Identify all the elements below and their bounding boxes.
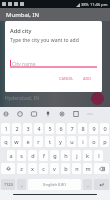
button[interactable]: x <box>28 163 37 174</box>
staticText: c <box>42 165 45 172</box>
button[interactable]: Voice input <box>44 110 52 118</box>
button[interactable]: k <box>83 150 92 161</box>
staticText: City name <box>12 61 36 68</box>
button[interactable]: 1 <box>1 123 10 134</box>
staticText: ADD <box>83 76 92 81</box>
button[interactable]: v <box>50 163 59 174</box>
staticText: s <box>20 152 23 159</box>
staticText: English (UK) <box>43 182 66 187</box>
staticText: CANCEL <box>59 76 74 81</box>
button[interactable]: More options <box>86 110 94 118</box>
staticText: 2 <box>15 125 19 132</box>
button[interactable]: j <box>72 150 81 161</box>
button[interactable]: . <box>83 179 92 190</box>
button[interactable]: t <box>45 136 54 147</box>
button[interactable]: z <box>17 163 26 174</box>
staticText: 5 <box>48 125 52 132</box>
button[interactable]: l <box>94 150 103 161</box>
staticText: u <box>70 138 74 145</box>
button[interactable]: e <box>23 136 32 147</box>
button[interactable]: s <box>17 150 26 161</box>
button[interactable]: a <box>7 150 15 161</box>
button[interactable]: n <box>72 163 81 174</box>
button[interactable]: 5 <box>45 123 54 134</box>
staticText: z <box>20 165 23 172</box>
staticText: h <box>64 152 68 159</box>
button[interactable]: 4 <box>34 123 43 134</box>
staticText: 7 <box>70 125 74 132</box>
button[interactable]: Stickers <box>16 110 24 118</box>
staticText: , <box>21 181 23 188</box>
staticText: f <box>43 152 45 159</box>
staticText: 3 <box>26 125 30 132</box>
button[interactable]: English (UK) <box>28 179 81 190</box>
staticText: 9 <box>92 125 96 132</box>
staticText: y <box>59 138 62 145</box>
staticText: 8 <box>81 125 85 132</box>
staticText: m <box>85 165 91 172</box>
staticText: 4 <box>37 125 41 132</box>
button[interactable]: o <box>89 136 98 147</box>
staticText: Add city <box>10 27 32 35</box>
staticText: 1 <box>4 125 8 132</box>
button[interactable]: c <box>39 163 48 174</box>
button[interactable]: Shift <box>1 163 15 174</box>
staticText: ?123 <box>4 182 13 187</box>
button[interactable]: CANCEL <box>56 73 77 84</box>
button[interactable]: q <box>1 136 10 147</box>
button[interactable]: g <box>50 150 59 161</box>
staticText: . <box>87 181 89 188</box>
staticText: x <box>31 165 34 172</box>
staticText: v <box>53 165 56 172</box>
button[interactable]: b <box>61 163 70 174</box>
staticText: q <box>4 138 8 145</box>
staticText: 38% 11:46 pm <box>81 2 108 7</box>
button[interactable]: 6 <box>56 123 65 134</box>
button[interactable]: Google search <box>2 110 10 118</box>
button[interactable]: Enter <box>94 179 109 190</box>
staticText: i <box>82 138 84 145</box>
button[interactable]: m <box>83 163 92 174</box>
button[interactable]: Clipboard <box>72 110 80 118</box>
button[interactable]: 9 <box>89 123 98 134</box>
button[interactable]: r <box>34 136 43 147</box>
button[interactable]: Backspace <box>94 163 109 174</box>
staticText: r <box>37 138 40 145</box>
staticText: n <box>75 165 79 172</box>
button[interactable]: 2 <box>12 123 21 134</box>
button[interactable]: f <box>39 150 48 161</box>
staticText: Hyderabad, IN <box>5 95 40 102</box>
button[interactable]: ?123 <box>1 179 15 190</box>
staticText: 6 <box>59 125 63 132</box>
staticText: a <box>9 152 13 159</box>
button[interactable]: y <box>56 136 65 147</box>
button[interactable]: 3 <box>23 123 32 134</box>
button[interactable]: p <box>100 136 109 147</box>
button[interactable]: h <box>61 150 70 161</box>
button[interactable]: ADD <box>80 73 95 84</box>
staticText: l <box>98 152 100 159</box>
staticText: b <box>64 165 68 172</box>
button[interactable]: u <box>67 136 76 147</box>
staticText: e <box>26 138 30 145</box>
staticText: k <box>86 152 89 159</box>
staticText: p <box>103 138 107 145</box>
button[interactable]: GIF <box>30 110 38 118</box>
staticText: 0 <box>103 125 107 132</box>
staticText: Mumbai, IN <box>6 11 40 19</box>
staticText: w <box>14 138 19 145</box>
button[interactable]: 0 <box>100 123 109 134</box>
button[interactable]: 7 <box>67 123 76 134</box>
staticText: g <box>53 152 57 159</box>
staticText: j <box>76 152 78 159</box>
button[interactable]: Settings <box>58 110 66 118</box>
staticText: o <box>92 138 96 145</box>
button[interactable]: , <box>17 179 26 190</box>
button[interactable]: d <box>28 150 37 161</box>
staticText: t <box>49 138 51 145</box>
staticText: d <box>31 152 35 159</box>
button[interactable]: 8 <box>78 123 87 134</box>
staticText: Type the city you want to add <box>10 37 79 44</box>
button[interactable]: i <box>78 136 87 147</box>
button[interactable]: w <box>12 136 21 147</box>
